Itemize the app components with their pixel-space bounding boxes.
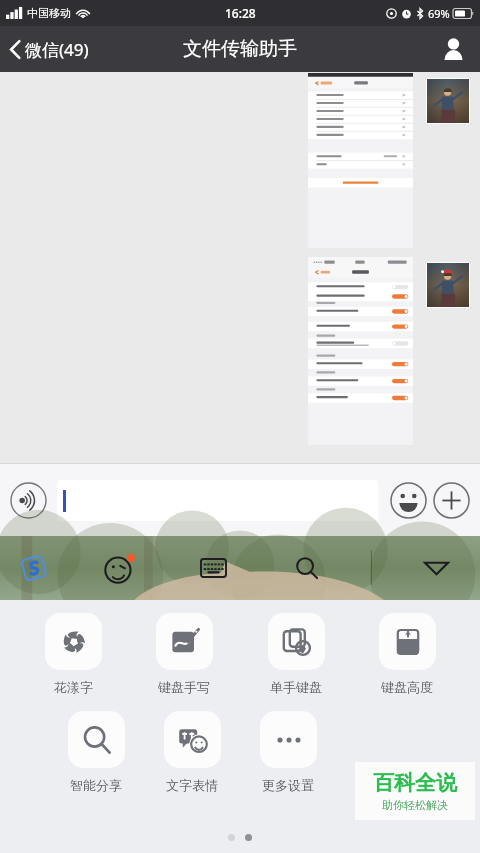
button[interactable]: 更多设置 <box>249 709 327 795</box>
button[interactable]: Sogou input method <box>14 548 54 588</box>
button[interactable]: Screenshot image <box>308 257 413 445</box>
staticText: 更多设置 <box>262 777 314 793</box>
button[interactable]: Keyboard <box>191 546 235 590</box>
button[interactable]: 百科全说 <box>355 762 475 820</box>
staticText: 键盘高度 <box>381 679 433 695</box>
button[interactable]: 键盘高度 <box>368 611 446 697</box>
staticText: 69% <box>428 6 450 21</box>
button[interactable]: 智能分享 <box>57 709 135 795</box>
button[interactable]: Search <box>285 546 329 590</box>
staticText: 文件传输助手 <box>183 37 297 61</box>
button[interactable]: Voice input <box>10 482 47 519</box>
button[interactable]: Screenshot image <box>308 73 413 248</box>
staticText: 16:28 <box>225 5 256 21</box>
button[interactable]: 微信(49) <box>0 32 99 67</box>
button[interactable] <box>57 480 378 521</box>
staticText: 文字表情 <box>166 777 218 793</box>
staticText: 助你轻松解决 <box>382 798 448 812</box>
button[interactable]: Contact profile <box>427 30 480 68</box>
staticText: 智能分享 <box>70 777 122 793</box>
staticText: 单手键盘 <box>270 679 322 695</box>
staticText: 微信(49) <box>25 38 89 61</box>
staticText: 花漾字 <box>54 679 93 695</box>
staticText: 键盘手写 <box>158 679 210 695</box>
button[interactable]: Hide keyboard <box>414 546 458 590</box>
staticText: 中国移动 <box>27 6 71 20</box>
button[interactable]: Emoji <box>390 482 427 519</box>
button[interactable]: 键盘手写 <box>145 611 223 697</box>
button[interactable]: More actions <box>433 482 470 519</box>
button[interactable]: Photo thumbnail <box>423 259 473 311</box>
staticText: 百科全说 <box>373 770 457 796</box>
button[interactable]: Emoji panel <box>99 547 141 589</box>
button[interactable]: 花漾字 <box>34 611 112 697</box>
button[interactable]: 文字表情 <box>153 709 231 795</box>
button[interactable]: Photo thumbnail <box>423 75 473 127</box>
button[interactable]: 单手键盘 <box>257 611 335 697</box>
